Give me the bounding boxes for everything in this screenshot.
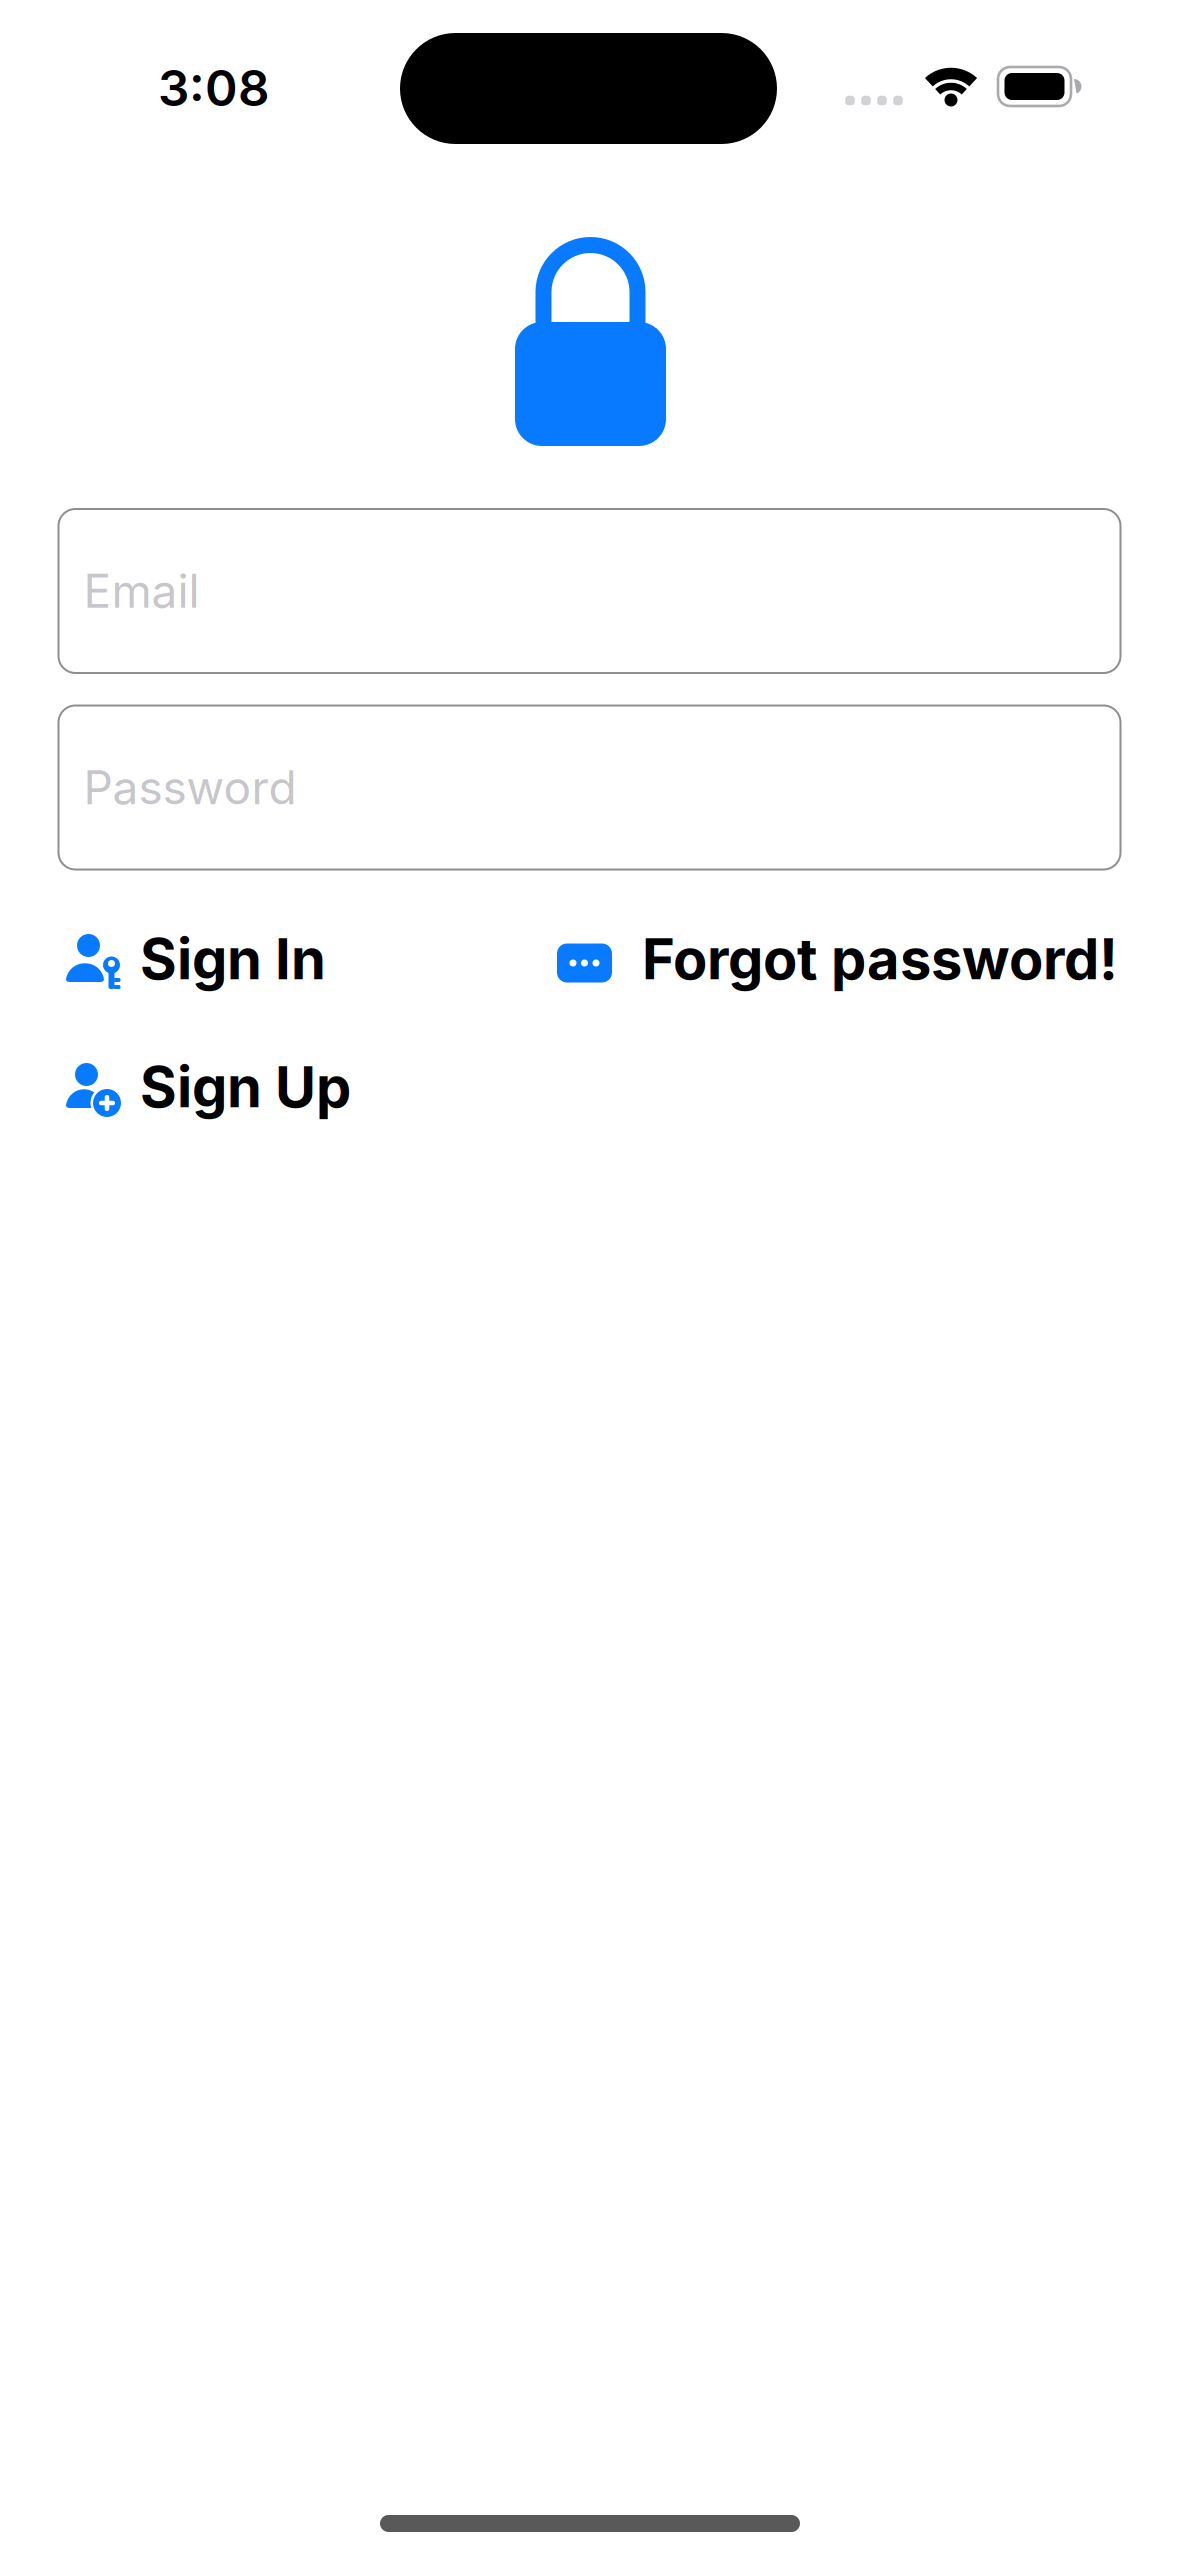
button[interactable]: Sign Up: [66, 1053, 351, 1121]
button[interactable]: Sign In: [66, 925, 326, 993]
staticText: Email: [83, 563, 199, 619]
button[interactable]: Forgot password!: [557, 925, 1118, 993]
staticText: Sign In: [140, 925, 326, 993]
staticText: Password: [83, 760, 296, 815]
staticText: 3:08: [158, 58, 270, 118]
staticText: Sign Up: [140, 1053, 351, 1121]
staticText: Forgot password!: [642, 925, 1118, 993]
